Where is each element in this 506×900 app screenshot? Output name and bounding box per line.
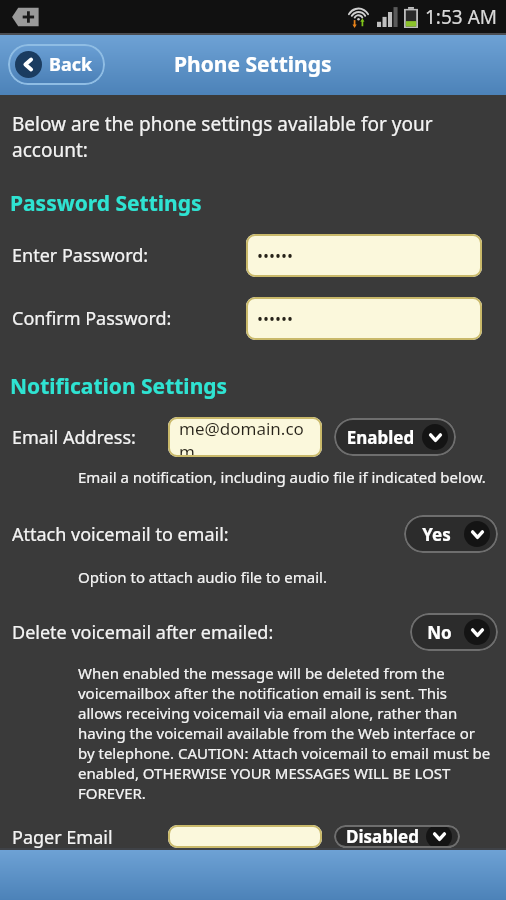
other: Open No dropdown	[464, 619, 490, 645]
staticText: me@domain.com	[179, 417, 311, 457]
staticText: Enter Password:	[12, 243, 246, 268]
staticText: Notification Settings	[10, 372, 228, 401]
staticText: Attach voicemail to email:	[12, 522, 404, 547]
staticText: Below are the phone settings available f…	[12, 111, 488, 163]
button[interactable]: Yes	[404, 515, 498, 553]
staticText: Password Settings	[10, 189, 202, 218]
staticText: Confirm Password:	[12, 306, 246, 331]
staticText: Option to attach audio file to email.	[78, 567, 327, 587]
staticText: 1:53 AM	[425, 4, 498, 30]
button[interactable]: Enabled	[334, 418, 456, 456]
button[interactable]: No	[410, 613, 498, 651]
staticText: ••••••	[257, 245, 294, 267]
other: Open Yes dropdown	[464, 521, 490, 547]
staticText: Email a notification, including audio fi…	[78, 467, 486, 487]
staticText: Phone Settings	[174, 50, 332, 79]
staticText: Delete voicemail after emailed:	[12, 620, 410, 645]
staticText: ••••••	[257, 308, 294, 330]
staticText: No	[418, 621, 461, 644]
staticText: Enabled	[342, 426, 419, 449]
button[interactable]: Disabled	[334, 825, 460, 848]
staticText: Yes	[412, 523, 461, 546]
staticText: Pager Email Address:	[12, 825, 168, 848]
button[interactable]: me@domain.com	[168, 417, 322, 457]
staticText: When enabled the message will be deleted…	[78, 663, 492, 803]
staticText: Disabled	[342, 825, 423, 848]
button[interactable]: Back	[8, 44, 105, 85]
button[interactable]: ••••••	[246, 234, 482, 277]
other: Open Enabled dropdown	[422, 424, 448, 450]
staticText: Email Address:	[12, 425, 168, 450]
button[interactable]	[168, 825, 322, 848]
other: Open Disabled dropdown	[426, 825, 452, 848]
button[interactable]: ••••••	[246, 297, 482, 340]
staticText: Back	[49, 52, 93, 77]
